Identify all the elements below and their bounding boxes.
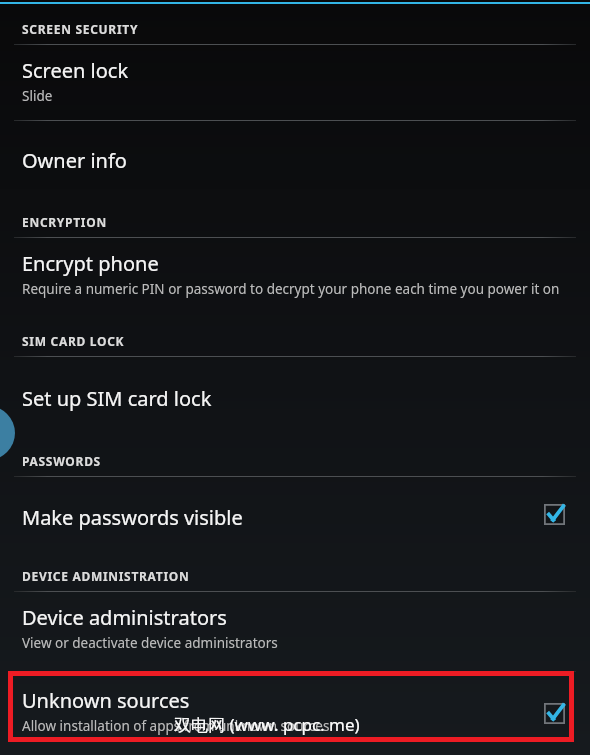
button[interactable]: Encrypt phone xyxy=(0,238,590,316)
staticText: Require a numeric PIN or password to dec… xyxy=(22,280,560,298)
button[interactable]: Unknown sources xyxy=(0,672,590,754)
staticText: Owner info xyxy=(22,147,127,174)
staticText: Slide xyxy=(22,87,53,105)
staticText: Device administrators xyxy=(22,604,227,631)
staticText: Encrypt phone xyxy=(22,250,159,277)
button[interactable]: Make passwords visible xyxy=(0,477,590,551)
staticText: PASSWORDS xyxy=(22,453,101,469)
staticText: DEVICE ADMINISTRATION xyxy=(22,568,190,584)
staticText: 双电网 (www. pcpc. me) xyxy=(174,713,360,736)
staticText: Unknown sources xyxy=(22,687,190,714)
staticText: Set up SIM card lock xyxy=(22,385,212,412)
button[interactable]: Device administrators xyxy=(0,592,590,671)
staticText: Make passwords visible xyxy=(22,504,243,531)
staticText: SIM CARD LOCK xyxy=(22,333,125,349)
button[interactable]: Set up SIM card lock xyxy=(0,357,590,435)
staticText: Screen lock xyxy=(22,57,129,84)
staticText: ENCRYPTION xyxy=(22,214,107,230)
staticText: Allow installation of apps from unknown … xyxy=(22,717,330,735)
other: Enabled, checked xyxy=(540,500,568,528)
staticText: SCREEN SECURITY xyxy=(22,21,139,37)
button[interactable]: Owner info xyxy=(0,121,590,196)
staticText: View or deactivate device administrators xyxy=(22,634,278,652)
button[interactable]: Screen lock xyxy=(0,45,590,120)
other: Enabled, checked xyxy=(540,699,568,727)
